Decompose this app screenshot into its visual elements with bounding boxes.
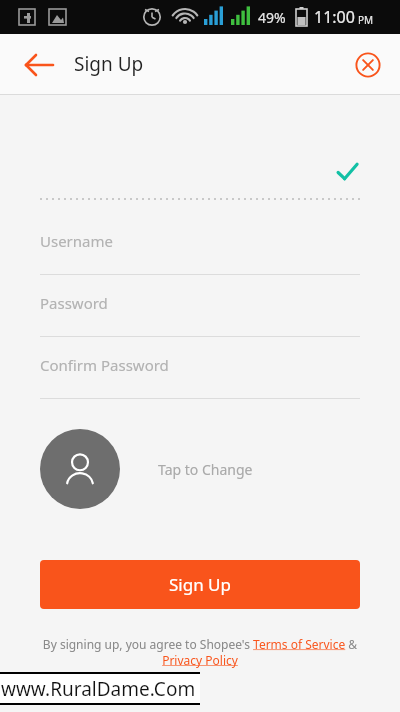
staticText: 11:00	[314, 6, 355, 28]
staticText: www.RuralDame.Com	[1, 676, 196, 702]
staticText: Sign Up	[74, 51, 144, 77]
staticText: PM	[358, 13, 374, 27]
button[interactable]: Sign Up	[40, 560, 360, 609]
button[interactable]: Password	[40, 285, 360, 337]
button[interactable]: By signing up, you agree to Shopee's Ter…	[30, 636, 370, 668]
staticText: Username	[40, 231, 113, 251]
button[interactable]: Confirm Password	[40, 347, 360, 399]
staticText: Sign Up	[169, 573, 231, 596]
staticText: Tap to Change	[158, 460, 253, 479]
button[interactable]: Username	[40, 223, 360, 275]
button[interactable]: Back	[12, 44, 54, 86]
staticText: 49%	[258, 8, 286, 27]
staticText: Confirm Password	[40, 355, 169, 375]
staticText: Password	[40, 293, 108, 313]
button[interactable]: Tap to Change	[40, 429, 270, 509]
button[interactable]: Close	[348, 45, 388, 85]
staticText: By signing up, you agree to Shopee's Ter…	[30, 636, 370, 668]
